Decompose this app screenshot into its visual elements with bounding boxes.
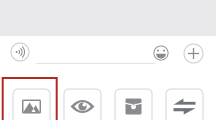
button[interactable]: Audio message bbox=[11, 43, 29, 61]
button[interactable]: Photo library bbox=[13, 89, 50, 120]
button[interactable]: Gift bbox=[115, 89, 152, 120]
button[interactable]: View once bbox=[64, 89, 101, 120]
button[interactable]: Transfer bbox=[166, 89, 203, 120]
button[interactable]: Emoji bbox=[153, 45, 169, 61]
button[interactable]: Add attachment bbox=[184, 44, 203, 63]
